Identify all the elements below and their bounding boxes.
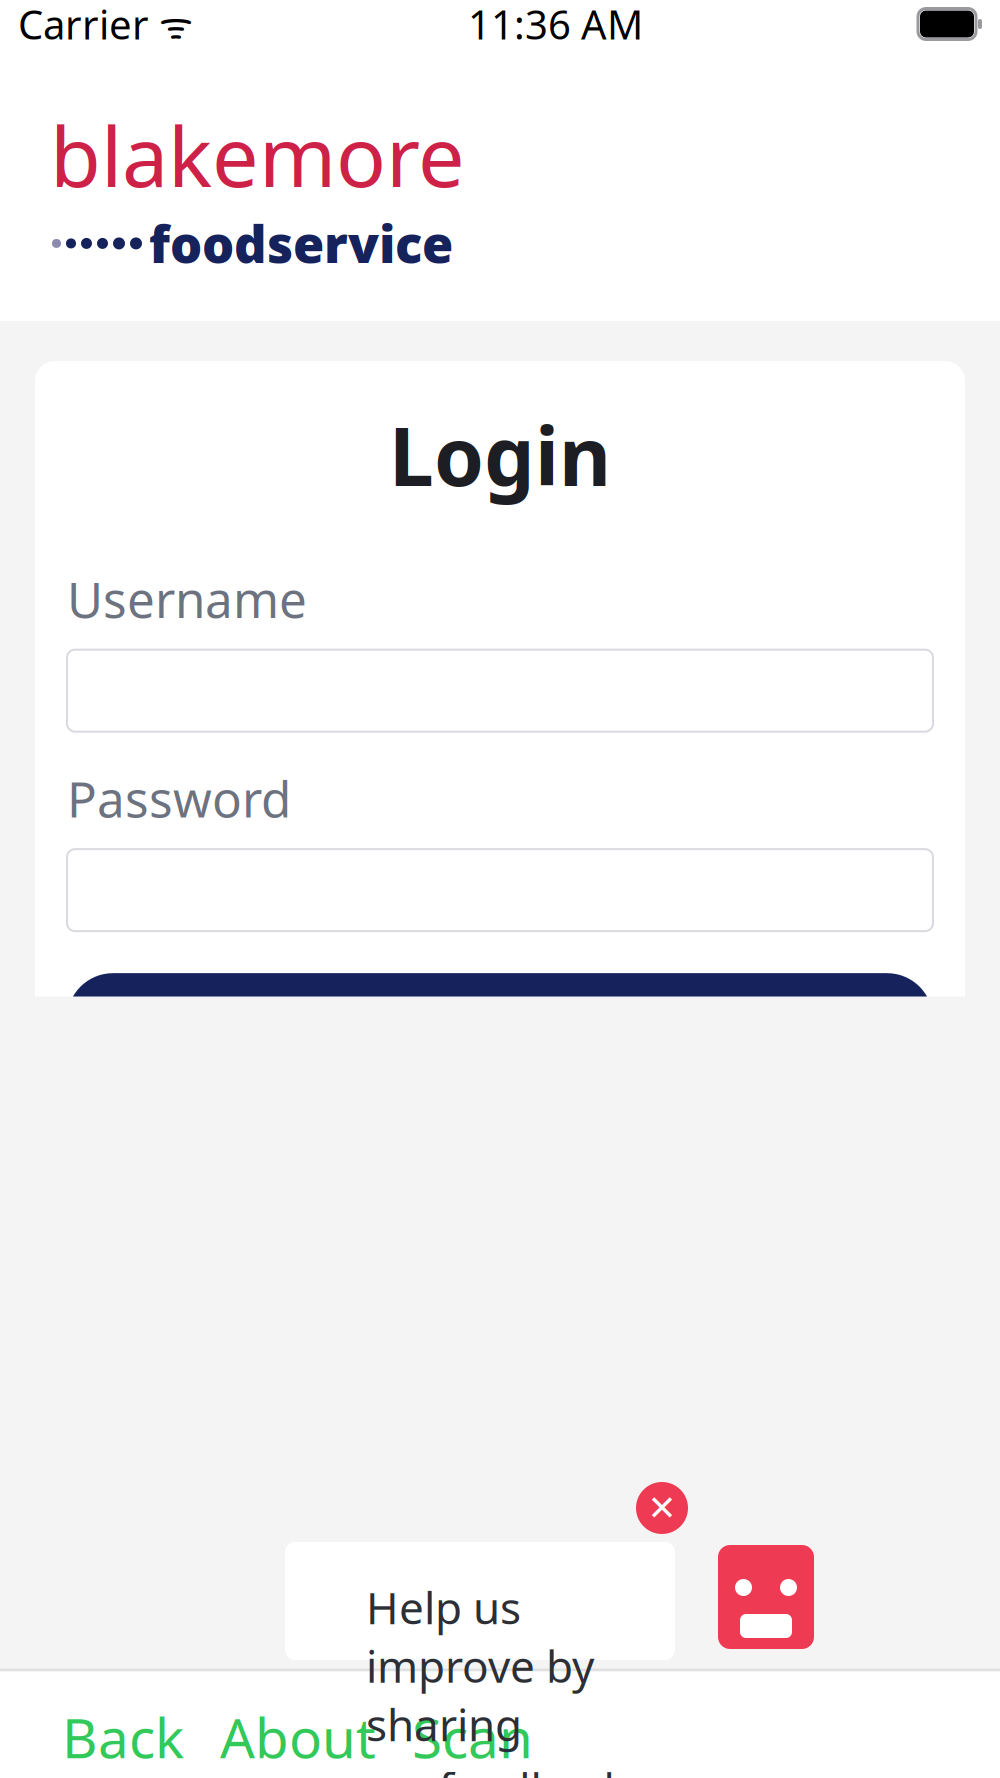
button[interactable]: Scan (394, 1693, 551, 1778)
staticText: Login (389, 402, 611, 508)
staticText: Back (62, 1701, 184, 1773)
button[interactable]: About (202, 1693, 394, 1778)
staticText: ready within 1 to 2 working days. (97, 1755, 903, 1778)
staticText: Help us improve by sharing (366, 1578, 594, 1753)
button[interactable]: Open feedback chat (718, 1545, 814, 1649)
staticText: foodservice (149, 210, 453, 277)
staticText: Carrier (18, 0, 149, 50)
staticText: Scan (412, 1701, 533, 1773)
button[interactable]: Help us improve by sharing (285, 1542, 675, 1660)
staticText: your feedback (333, 1759, 626, 1778)
staticText: About (220, 1701, 376, 1773)
staticText: 11:36 AM (468, 0, 643, 50)
button[interactable]: Username (67, 650, 933, 732)
staticText: Password (67, 766, 291, 831)
staticText: Login (430, 984, 570, 1055)
button[interactable]: Login (67, 973, 933, 1065)
staticText: We aim to have your account processed an… (146, 1605, 853, 1743)
button[interactable]: Close feedback prompt (636, 1482, 688, 1534)
staticText: Username (67, 566, 307, 632)
staticText: blakemore (50, 100, 465, 210)
staticText: ᯤ (149, 0, 193, 49)
button[interactable]: Back (44, 1693, 202, 1778)
staticText: Register for an account to pay by card. (98, 1410, 902, 1549)
staticText: ✕ (647, 1488, 676, 1528)
button[interactable]: Password (67, 849, 933, 931)
